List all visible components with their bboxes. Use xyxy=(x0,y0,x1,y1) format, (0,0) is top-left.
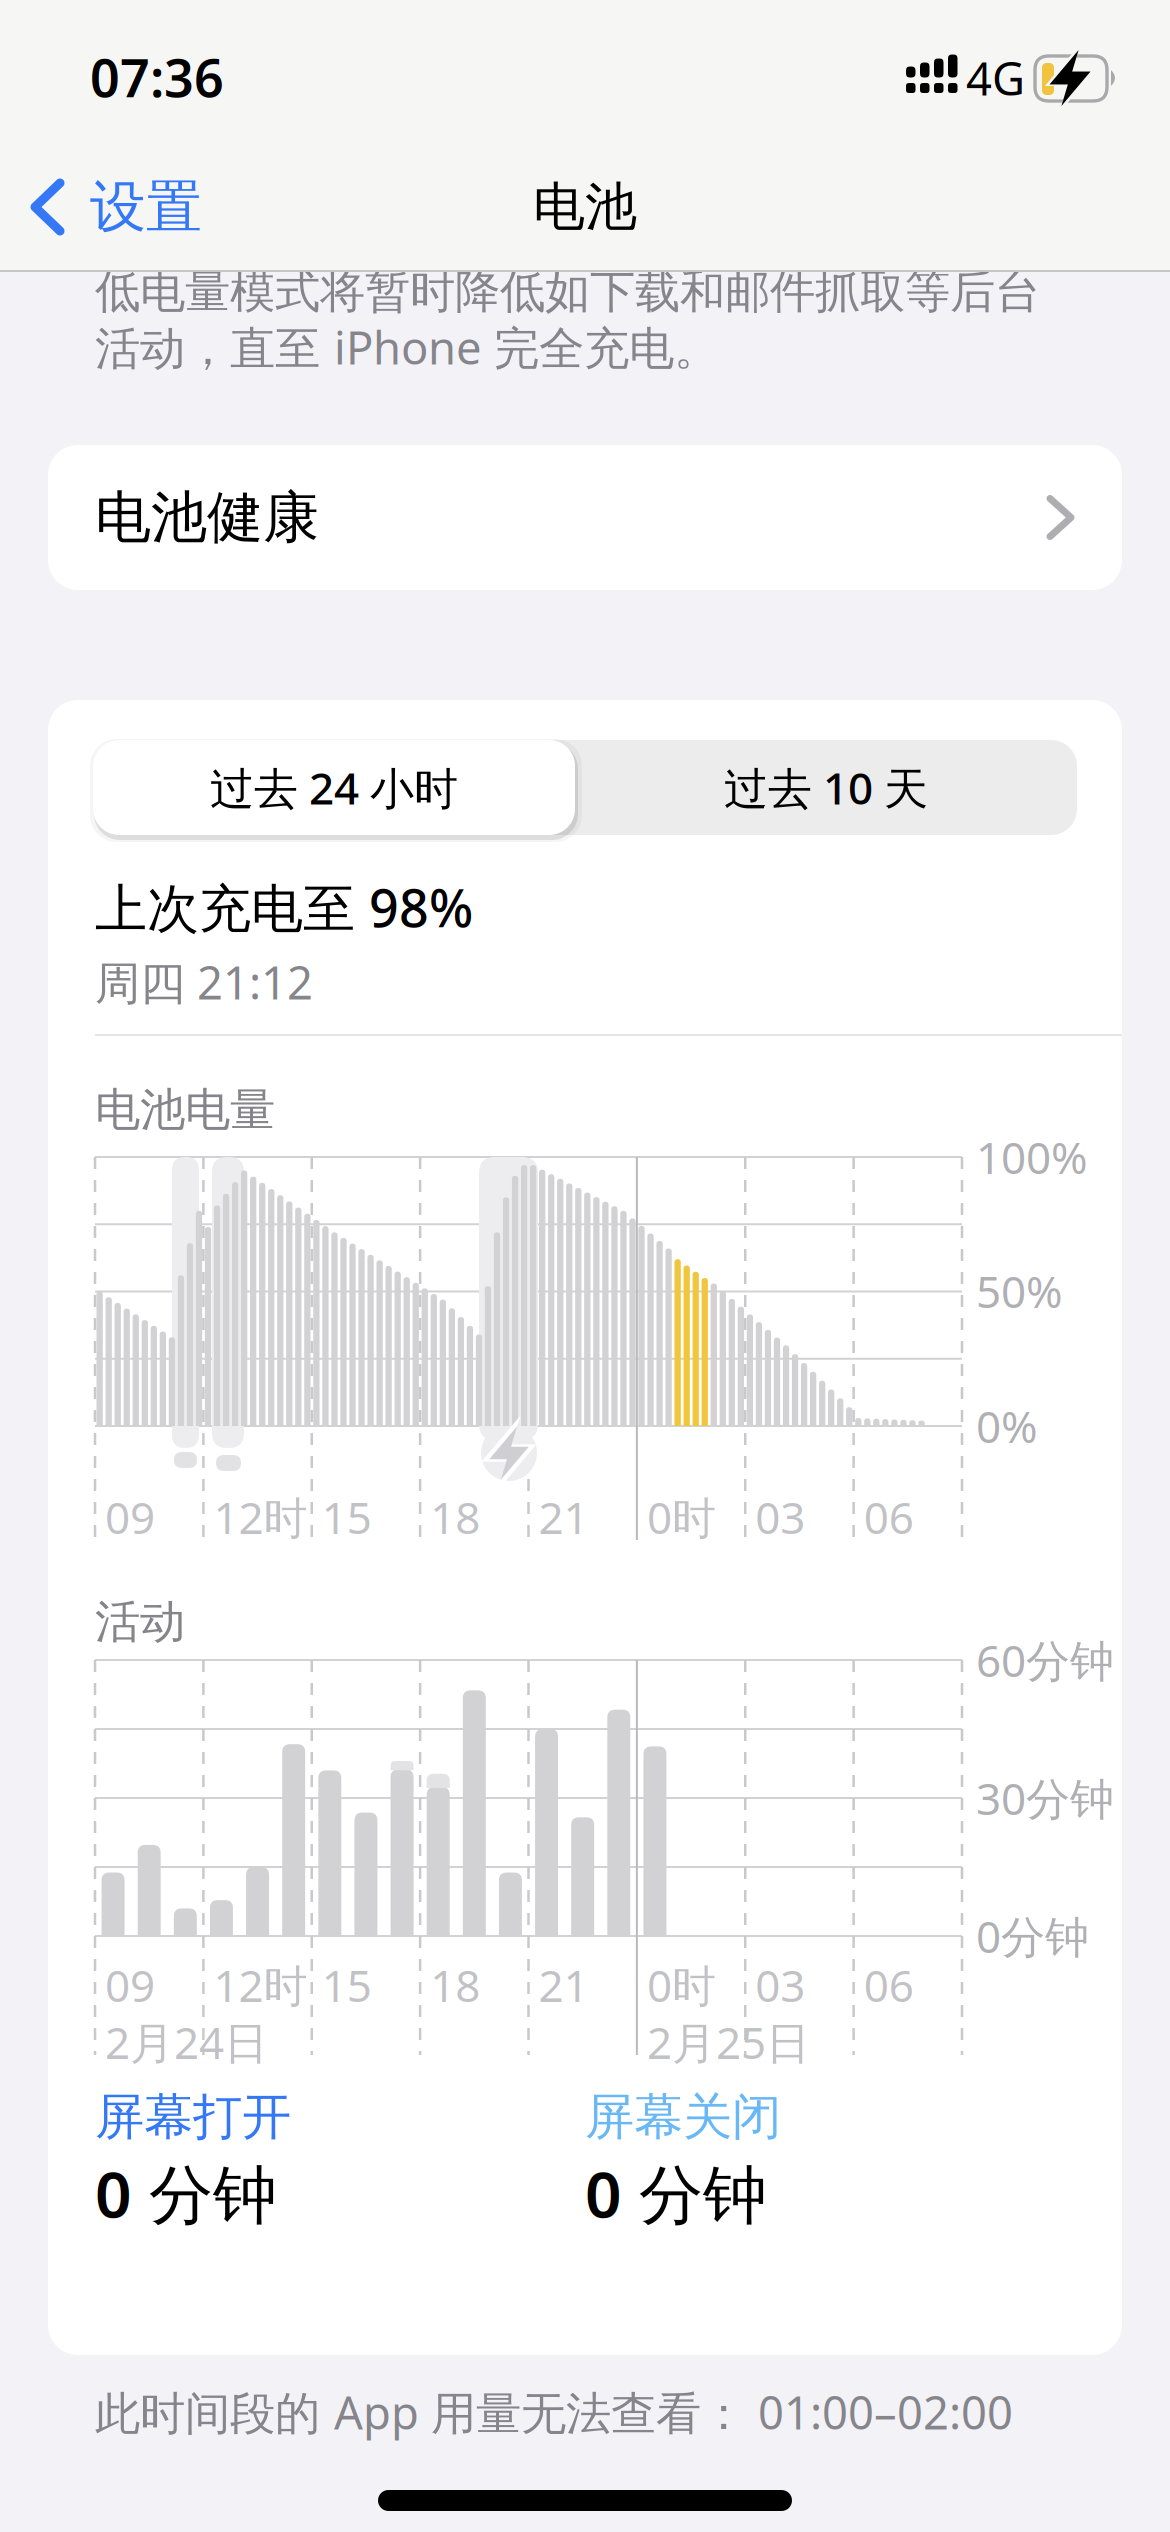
staticText: 60分钟 xyxy=(976,1631,1114,1689)
staticText: 18 xyxy=(430,1956,480,2014)
staticText: 0时 xyxy=(647,1956,716,2014)
staticText: 此时间段的 App 用量无法查看： 01:00–02:00 xyxy=(95,2382,1013,2442)
staticText: 06 xyxy=(864,1488,914,1546)
staticText: 过去 24 小时 xyxy=(210,758,458,817)
staticText: 09 xyxy=(105,1488,155,1546)
button[interactable]: 电池健康 xyxy=(48,445,1122,590)
staticText: 周四 21:12 xyxy=(95,952,313,1012)
staticText: 06 xyxy=(864,1956,914,2014)
staticText: 0时 xyxy=(647,1488,716,1546)
button[interactable]: 过去 10 天 xyxy=(575,740,1077,835)
button[interactable]: 过去 24 小时 xyxy=(93,740,575,835)
staticText: 15 xyxy=(322,1956,372,2014)
staticText: 12时 xyxy=(213,1488,307,1546)
staticText: 0分钟 xyxy=(976,1907,1089,1965)
staticText: 设置 xyxy=(90,173,202,241)
staticText: 12时 xyxy=(213,1956,307,2014)
staticText: 上次充电至 98% xyxy=(95,872,473,942)
button[interactable]: 返回设置 xyxy=(30,172,202,242)
staticText: 07:36 xyxy=(90,42,224,112)
staticText: 30分钟 xyxy=(976,1769,1114,1827)
staticText: 0% xyxy=(976,1397,1038,1455)
staticText: 2月24日 xyxy=(105,2013,268,2071)
staticText: 电池电量 xyxy=(95,1082,275,1138)
staticText: 过去 10 天 xyxy=(724,758,928,817)
staticText: 18 xyxy=(430,1488,480,1546)
staticText: 0 分钟 xyxy=(95,2150,277,2235)
staticText: 21 xyxy=(538,1488,588,1546)
staticText: 100% xyxy=(976,1128,1088,1186)
staticText: 50% xyxy=(976,1262,1063,1320)
staticText: 屏幕关闭 xyxy=(585,2087,781,2147)
staticText: 09 xyxy=(105,1956,155,2014)
staticText: 电池 xyxy=(533,175,637,239)
staticText: 2月25日 xyxy=(647,2013,810,2071)
staticText: 活动 xyxy=(95,1594,185,1650)
staticText: 屏幕打开 xyxy=(95,2087,291,2147)
staticText: 0 分钟 xyxy=(585,2150,767,2235)
staticText: 电池健康 xyxy=(95,483,319,552)
staticText: 活动，直至 iPhone 完全充电。 xyxy=(95,317,719,377)
staticText: 03 xyxy=(755,1488,805,1546)
staticText: 15 xyxy=(322,1488,372,1546)
staticText: 4G xyxy=(966,48,1025,108)
staticText: 低电量模式将暂时降低如下载和邮件抓取等后台 xyxy=(95,264,1040,320)
staticText: 21 xyxy=(538,1956,588,2014)
staticText: 03 xyxy=(755,1956,805,2014)
